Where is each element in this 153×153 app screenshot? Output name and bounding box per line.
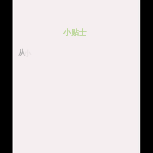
staticText: 从	[18, 48, 26, 57]
staticText: 小贴士	[63, 27, 87, 37]
staticText: 小	[24, 49, 32, 58]
